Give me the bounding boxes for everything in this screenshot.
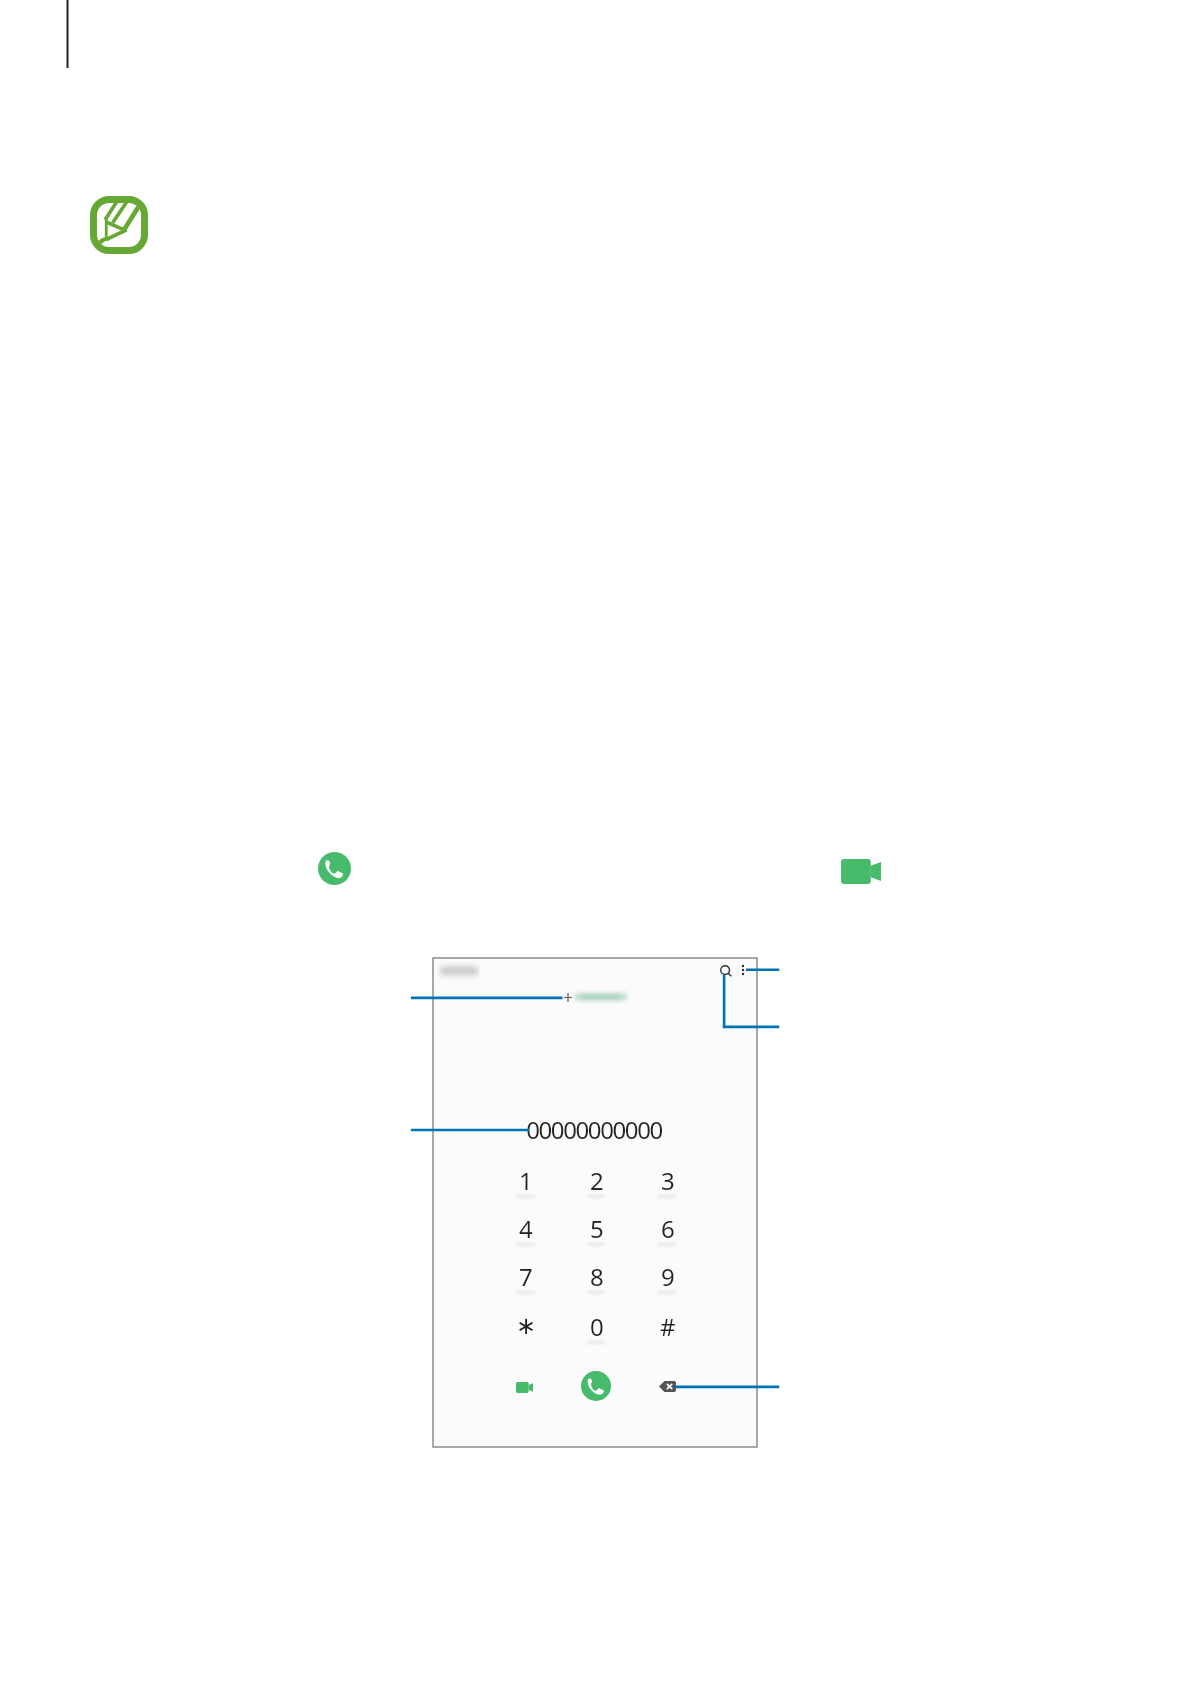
staticText: 3 xyxy=(661,1164,675,1197)
button[interactable]: 2 xyxy=(573,1160,621,1200)
staticText: 8 xyxy=(590,1260,604,1293)
staticText: 6 xyxy=(661,1212,675,1245)
other: Note xyxy=(90,196,148,254)
button[interactable]: 6 xyxy=(644,1208,692,1248)
button[interactable]: 1 xyxy=(502,1160,550,1200)
button[interactable]: ∗ xyxy=(502,1306,550,1346)
button[interactable]: 7 xyxy=(502,1256,550,1296)
staticText: 2 xyxy=(590,1164,604,1197)
button[interactable]: Search xyxy=(715,960,737,982)
button[interactable]: More options xyxy=(736,963,750,977)
button[interactable]: Backspace xyxy=(659,1381,676,1392)
button[interactable]: # xyxy=(644,1306,692,1346)
staticText: 00000000000 xyxy=(526,1113,662,1146)
staticText: 0 xyxy=(590,1310,604,1343)
button[interactable]: 3 xyxy=(644,1160,692,1200)
button[interactable]: 8 xyxy=(573,1256,621,1296)
button[interactable]: 4 xyxy=(502,1208,550,1248)
button[interactable]: Video call xyxy=(841,859,881,884)
button[interactable]: 9 xyxy=(644,1256,692,1296)
button[interactable]: Video call xyxy=(516,1382,533,1393)
button[interactable]: 5 xyxy=(573,1208,621,1248)
staticText: # xyxy=(660,1310,676,1343)
button[interactable]: Call xyxy=(581,1371,611,1401)
staticText: 1 xyxy=(519,1164,533,1197)
staticText: 4 xyxy=(519,1212,533,1245)
button[interactable]: 0 xyxy=(573,1306,621,1346)
staticText: 7 xyxy=(519,1260,533,1293)
staticText: ∗ xyxy=(516,1312,537,1340)
button[interactable]: Call xyxy=(318,852,351,885)
staticText: 9 xyxy=(661,1260,675,1293)
staticText: 5 xyxy=(590,1212,604,1245)
